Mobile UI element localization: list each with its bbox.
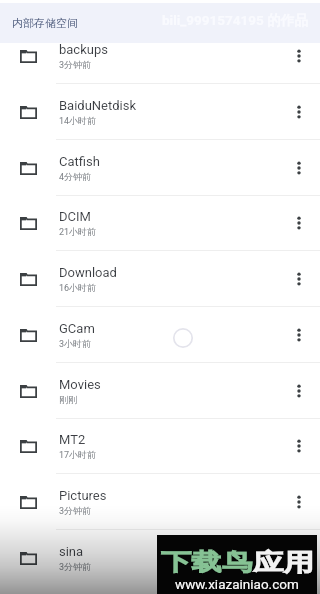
staticText: Catfish	[59, 154, 100, 169]
staticText: 21小时前	[59, 226, 97, 237]
button[interactable]: More options	[278, 84, 320, 140]
staticText: bili_9991574195 的作品	[162, 12, 308, 29]
staticText: GCam	[59, 321, 95, 336]
button[interactable]: BaiduNetdisk	[0, 84, 320, 140]
staticText: 16小时前	[59, 282, 97, 293]
button[interactable]: DCIM	[0, 195, 320, 251]
button[interactable]: More options	[278, 251, 320, 307]
staticText: 3小时前	[59, 338, 92, 349]
staticText: Pictures	[59, 488, 107, 503]
staticText: BaiduNetdisk	[59, 98, 137, 113]
button[interactable]: More options	[278, 28, 320, 84]
staticText: MT2	[59, 432, 86, 447]
button[interactable]: Download	[0, 251, 320, 307]
staticText: 刚刚	[59, 394, 77, 405]
button[interactable]: sina	[0, 530, 320, 586]
staticText: 下载鸟	[161, 548, 253, 576]
button[interactable]: Catfish	[0, 140, 320, 196]
staticText: 应用	[253, 548, 314, 576]
staticText: 3分钟前	[59, 505, 92, 516]
staticText: Movies	[59, 377, 101, 392]
staticText: 4分钟前	[59, 171, 92, 182]
button[interactable]: More options	[278, 530, 320, 586]
staticText: sina	[59, 544, 84, 559]
button[interactable]: More options	[278, 418, 320, 474]
button[interactable]: backups	[0, 28, 320, 84]
button[interactable]: Pictures	[0, 474, 320, 530]
button[interactable]: More options	[278, 140, 320, 196]
staticText: 内部存储空间	[12, 16, 78, 30]
staticText: 3分钟前	[59, 561, 92, 572]
staticText: 17小时前	[59, 449, 97, 460]
button[interactable]: Movies	[0, 363, 320, 419]
button[interactable]: More options	[278, 307, 320, 363]
staticText: 14小时前	[59, 115, 97, 126]
button[interactable]: More options	[278, 195, 320, 251]
button[interactable]: More options	[278, 474, 320, 530]
staticText: DCIM	[59, 209, 91, 224]
staticText: Download	[59, 265, 117, 280]
staticText: backups	[59, 42, 108, 57]
button[interactable]: GCam	[0, 307, 320, 363]
staticText: 3分钟前	[59, 59, 92, 70]
button[interactable]: More options	[278, 363, 320, 419]
staticText: www.xiazainiao.com	[175, 576, 299, 592]
button[interactable]: MT2	[0, 418, 320, 474]
